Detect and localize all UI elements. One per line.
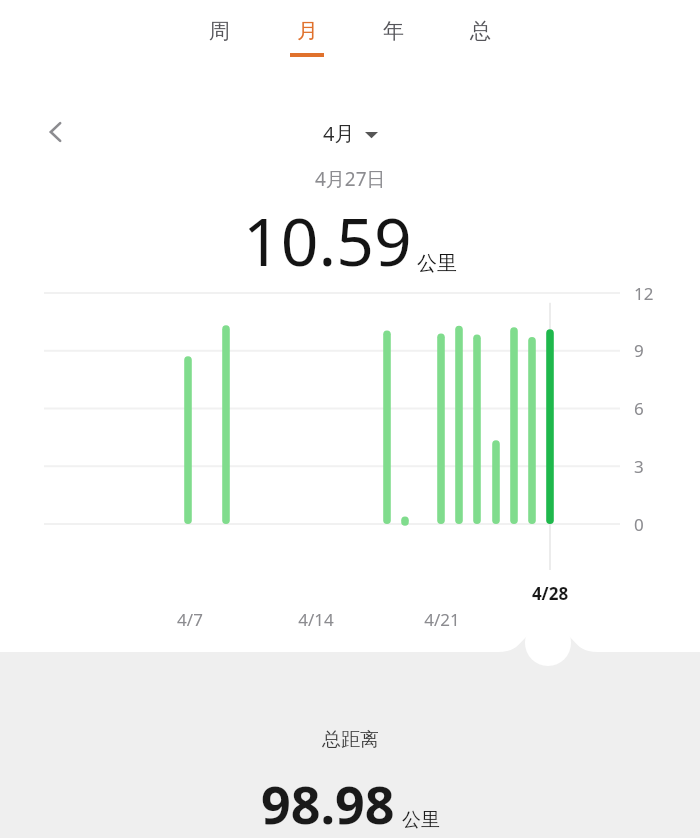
staticText: 4/14	[284, 608, 348, 631]
staticText: 4月	[323, 120, 355, 147]
staticText: 公里	[402, 808, 440, 832]
staticText: 4/7	[158, 608, 222, 631]
staticText: 总	[470, 18, 491, 44]
staticText: 总距离	[322, 728, 379, 752]
button[interactable]: 总	[437, 0, 524, 74]
button[interactable]: 周	[176, 0, 263, 74]
staticText: 9	[634, 339, 644, 362]
staticText: 月	[297, 18, 318, 44]
button[interactable]: Back	[32, 108, 80, 156]
staticText: 4/28	[518, 582, 582, 605]
button[interactable]: 年	[350, 0, 437, 74]
staticText: 年	[383, 18, 404, 44]
button[interactable]: 月	[263, 0, 350, 74]
staticText: 12	[634, 282, 654, 305]
staticText: 周	[209, 18, 230, 44]
staticText: 98.98	[261, 768, 395, 838]
staticText: 4月27日	[315, 166, 386, 192]
staticText: 0	[634, 513, 644, 536]
staticText: 公里	[417, 251, 457, 276]
staticText: 10.59	[243, 195, 412, 285]
button[interactable]: 4月	[323, 120, 378, 147]
staticText: 4/21	[410, 608, 474, 631]
staticText: 6	[634, 397, 644, 420]
staticText: 3	[634, 455, 644, 478]
